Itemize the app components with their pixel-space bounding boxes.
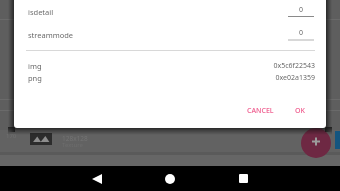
- button[interactable]: Add: [301, 128, 331, 158]
- button[interactable]: Back: [85, 166, 109, 191]
- staticText: 0x5c6f22543: [215, 61, 315, 71]
- button[interactable]: streammode: [14, 24, 326, 46]
- staticText: 128x128: [62, 134, 88, 143]
- button[interactable]: Home: [157, 166, 182, 191]
- staticText: png: [28, 73, 42, 83]
- button[interactable]: Recent apps: [231, 166, 255, 191]
- button[interactable]: png: [14, 70, 326, 84]
- staticText: streammode: [28, 30, 74, 40]
- staticText: 0: [288, 28, 314, 38]
- staticText: img: [28, 61, 42, 71]
- button[interactable]: isdetail: [14, 1, 326, 23]
- button[interactable]: img: [14, 58, 326, 72]
- staticText: OK: [295, 106, 305, 116]
- staticText: isdetail: [28, 7, 54, 17]
- staticText: 0xe02a1359: [215, 73, 315, 83]
- button[interactable]: 170: [0, 131, 340, 152]
- button[interactable]: OK: [295, 106, 305, 116]
- staticText: CANCEL: [247, 106, 274, 116]
- staticText: 170: [6, 132, 17, 140]
- staticText: 0: [288, 5, 314, 15]
- button[interactable]: CANCEL: [247, 106, 274, 116]
